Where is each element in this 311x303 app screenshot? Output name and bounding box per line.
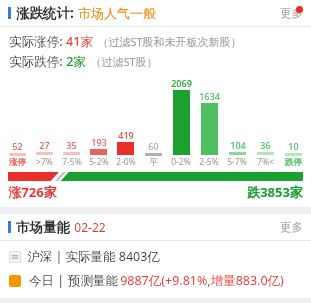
staticText: 市场量能 [16,219,70,236]
staticText: 27 [39,139,50,151]
staticText: 5-2% [89,156,109,168]
staticText: 2-0% [116,156,136,168]
button[interactable]: 市场量能 [0,214,311,240]
staticText: 涨停 [9,157,26,168]
staticText: 7-5% [62,156,82,168]
staticText: 5-7% [227,156,247,168]
staticText: 9887亿(+9.81%,增量883.0亿) [120,272,284,289]
staticText: 2069 [171,77,192,89]
staticText: 更多 [280,220,303,234]
staticText: 60 [148,140,159,152]
staticText: 实际跌停: [9,53,63,70]
staticText: 跌停 [285,157,302,168]
staticText: 7%< [257,156,274,168]
staticText: 1634 [199,90,220,102]
staticText: 涨跌统计: [16,4,74,22]
staticText: 193 [91,136,107,148]
staticText: 涨726家 [8,183,57,201]
staticText: 沪深 | 实际量能 8403亿 [27,248,160,265]
staticText: 0-2% [171,156,191,168]
staticText: 2-5% [199,156,219,168]
staticText: （过滤ST股和未开板次新股） [97,34,242,49]
button[interactable]: 涨跌统计: [0,0,311,26]
staticText: 52 [12,140,23,152]
staticText: 预测量能 [66,272,120,289]
staticText: 35 [66,139,77,151]
staticText: 02-22 [74,219,106,235]
staticText: 今日 | [27,272,66,289]
staticText: （过滤ST股） [90,54,158,69]
staticText: >7% [36,156,53,168]
staticText: 市场人气一般 [78,5,156,21]
button[interactable]: 今日 | [0,271,311,290]
staticText: 更多 [280,6,303,20]
staticText: 2家 [66,53,86,70]
button[interactable]: 沪深 | 实际量能 8403亿 [0,247,311,266]
staticText: 10 [288,140,299,152]
staticText: 41家 [66,33,93,50]
staticText: 平 [149,157,158,168]
staticText: 419 [118,129,134,141]
staticText: 跌3853家 [247,183,303,201]
staticText: 实际涨停: [9,33,63,50]
staticText: 36 [260,139,271,151]
staticText: 104 [230,139,246,151]
